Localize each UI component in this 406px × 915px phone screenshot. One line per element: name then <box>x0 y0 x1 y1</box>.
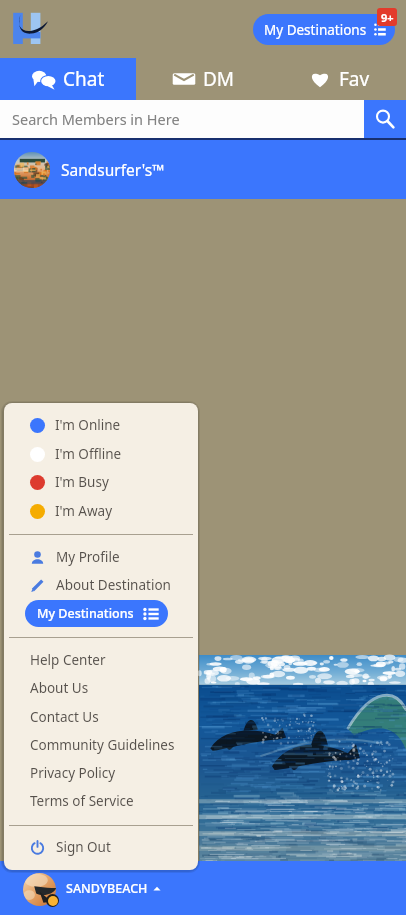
button[interactable]: Sandsurfer's™ <box>0 140 406 199</box>
button[interactable]: Terms of Service <box>4 787 198 815</box>
button[interactable]: DM <box>136 58 271 100</box>
button[interactable]: Community Guidelines <box>4 731 198 759</box>
staticText: My Destinations <box>264 21 367 39</box>
button[interactable]: Search <box>364 100 406 138</box>
staticText: Privacy Policy <box>30 764 116 782</box>
staticText: Help Center <box>30 651 106 669</box>
staticText: Community Guidelines <box>30 736 175 754</box>
staticText: Sign Out <box>56 838 111 856</box>
button[interactable]: I'm Busy <box>4 468 198 496</box>
staticText: My Profile <box>56 548 120 566</box>
staticText: Fav <box>339 66 370 92</box>
staticText: Sandsurfer's™ <box>61 159 165 180</box>
button[interactable]: Chat <box>0 58 136 100</box>
staticText: Chat <box>63 66 105 92</box>
button[interactable]: I'm Offline <box>4 440 198 468</box>
button[interactable]: Sign Out <box>4 833 198 861</box>
staticText: About Us <box>30 679 89 697</box>
staticText: SANDYBEACH <box>66 880 148 897</box>
button[interactable]: SANDYBEACH <box>0 861 406 915</box>
staticText: Search Members in Here <box>12 109 180 129</box>
staticText: I'm Online <box>55 416 121 434</box>
button[interactable]: Privacy Policy <box>4 759 198 787</box>
staticText: Terms of Service <box>30 792 134 810</box>
button[interactable]: I'm Away <box>4 497 198 525</box>
staticText: I'm Away <box>55 502 113 520</box>
staticText: Contact Us <box>30 708 99 726</box>
button[interactable]: My Destinations <box>253 14 395 45</box>
staticText: My Destinations <box>37 605 134 622</box>
staticText: 9+ <box>381 10 394 25</box>
button[interactable]: About Destination <box>4 571 198 599</box>
button[interactable]: Fav <box>271 58 406 100</box>
staticText: DM <box>203 66 235 92</box>
staticText: I'm Busy <box>55 473 109 491</box>
button[interactable]: My Profile <box>4 543 198 571</box>
button[interactable]: Home <box>12 8 52 48</box>
button[interactable]: My Destinations <box>25 600 168 627</box>
staticText: About Destination <box>56 576 171 594</box>
button[interactable]: Contact Us <box>4 703 198 731</box>
button[interactable]: Help Center <box>4 646 198 674</box>
button[interactable]: I'm Online <box>4 411 198 439</box>
staticText: I'm Offline <box>55 445 122 463</box>
button[interactable]: About Us <box>4 674 198 702</box>
